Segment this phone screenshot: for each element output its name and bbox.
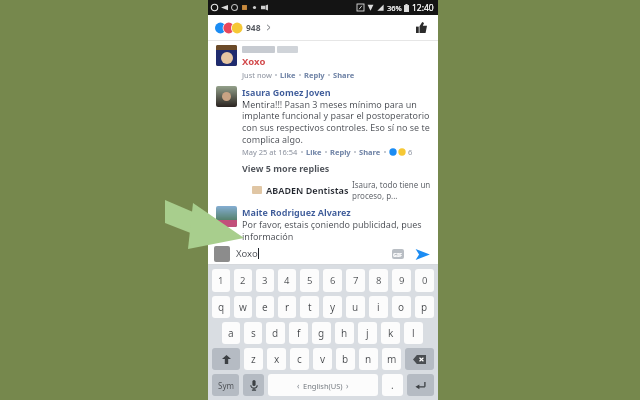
button[interactable]: e [256, 296, 274, 318]
button[interactable]: Shift [212, 348, 240, 370]
staticText: s [251, 326, 256, 340]
staticText: información [242, 230, 294, 242]
button[interactable]: x [267, 348, 286, 370]
button[interactable]: 8 [369, 269, 388, 292]
button[interactable]: Backspace [405, 348, 434, 370]
button[interactable]: 0 [415, 269, 434, 292]
button[interactable]: j [358, 322, 377, 344]
staticText: Maite Rodriguez Alvarez [242, 206, 351, 218]
staticText: u [352, 300, 359, 314]
button[interactable]: h [335, 322, 354, 344]
button[interactable]: r [278, 296, 296, 318]
staticText: Xoxo [242, 55, 266, 68]
staticText: 1 [218, 274, 224, 287]
staticText: › [346, 380, 349, 391]
staticText: o [398, 300, 405, 314]
button[interactable]: . [382, 374, 403, 396]
staticText: f [297, 326, 301, 340]
staticText: Reply [330, 147, 351, 157]
button[interactable]: 1 [212, 269, 230, 292]
staticText: g [318, 326, 325, 340]
button[interactable]: Send [412, 244, 432, 264]
staticText: 7 [353, 274, 359, 287]
button[interactable]: 9 [392, 269, 411, 292]
button[interactable]: f [289, 322, 308, 344]
button[interactable]: u [346, 296, 365, 318]
button[interactable]: Enter [407, 374, 434, 396]
staticText: c [297, 352, 302, 366]
button[interactable]: k [381, 322, 400, 344]
button[interactable]: Voice input [243, 374, 264, 396]
staticText: h [341, 326, 348, 340]
staticText: Reply [304, 70, 325, 80]
staticText: j [366, 326, 369, 340]
staticText: d [272, 326, 279, 340]
button[interactable]: Isaura Gomez Joven [208, 86, 438, 157]
staticText: x [274, 352, 280, 366]
staticText: e [262, 300, 268, 314]
staticText: v [320, 352, 326, 366]
staticText: 6 [330, 274, 336, 287]
button[interactable]: Your profile photo [214, 246, 230, 262]
button[interactable]: d [266, 322, 285, 344]
button[interactable]: a [222, 322, 240, 344]
staticText: n [365, 352, 372, 366]
button[interactable]: g [312, 322, 331, 344]
button[interactable]: Xoxo [236, 247, 392, 260]
staticText: 12:40 [412, 2, 434, 14]
staticText: Like [280, 70, 296, 80]
button[interactable]: GIF [392, 249, 404, 259]
staticText: q [218, 300, 225, 314]
button[interactable]: 5 [300, 269, 319, 292]
staticText: 36% [387, 3, 402, 13]
staticText: GIF [393, 251, 403, 258]
button[interactable]: ABADEN Dentistas [208, 179, 438, 201]
staticText: Share [333, 70, 355, 80]
staticText: Mentira!!! Pasan 3 meses mínimo para un … [242, 98, 430, 146]
button[interactable]: m [382, 348, 401, 370]
button[interactable]: Xoxo [208, 41, 438, 80]
staticText: 8 [376, 274, 382, 287]
staticText: z [251, 352, 256, 366]
button[interactable]: q [212, 296, 230, 318]
staticText: w [239, 300, 247, 314]
button[interactable]: View 5 more replies [208, 162, 438, 174]
staticText: r [285, 300, 290, 314]
button[interactable]: 2 [234, 269, 252, 292]
button[interactable]: v [313, 348, 332, 370]
button[interactable]: 3 [256, 269, 274, 292]
button[interactable]: ‹ [268, 374, 378, 396]
staticText: 3 [262, 274, 268, 287]
staticText: 5 [307, 274, 313, 287]
button[interactable]: l [404, 322, 423, 344]
staticText: a [228, 326, 234, 340]
staticText: Like [306, 147, 322, 157]
button[interactable]: s [244, 322, 262, 344]
button[interactable]: n [359, 348, 378, 370]
staticText: Por favor, estais çoniendo publicidad, p… [242, 218, 422, 230]
button[interactable]: z [244, 348, 263, 370]
staticText: Isaura Gomez Joven [242, 86, 331, 98]
button[interactable]: t [300, 296, 319, 318]
staticText: p [421, 300, 428, 314]
button[interactable]: 6 [323, 269, 342, 292]
button[interactable]: p [415, 296, 434, 318]
button[interactable]: Sym [212, 374, 239, 396]
button[interactable]: b [336, 348, 355, 370]
button[interactable]: w [234, 296, 252, 318]
button[interactable]: Maite Rodriguez Alvarez [208, 206, 438, 242]
button[interactable]: Like [412, 18, 431, 37]
button[interactable]: 7 [346, 269, 365, 292]
button[interactable]: 948 [208, 15, 438, 40]
staticText: 0 [422, 274, 428, 287]
staticText: 4 [284, 274, 290, 287]
staticText: b [342, 352, 349, 366]
button[interactable]: 4 [278, 269, 296, 292]
staticText: t [308, 300, 312, 314]
staticText: 9 [399, 274, 405, 287]
button[interactable]: c [290, 348, 309, 370]
button[interactable]: o [392, 296, 411, 318]
button[interactable]: y [323, 296, 342, 318]
staticText: 2 [240, 274, 246, 287]
button[interactable]: i [369, 296, 388, 318]
